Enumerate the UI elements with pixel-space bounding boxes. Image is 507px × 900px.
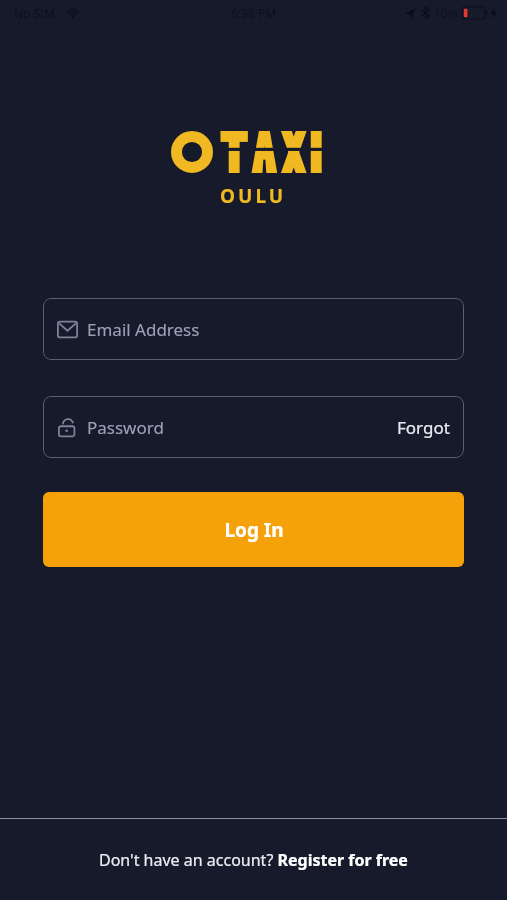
staticText: 10%: [434, 5, 458, 21]
other: Password: [57, 417, 78, 438]
other: Email: [57, 319, 78, 340]
staticText: Password: [87, 416, 164, 439]
staticText: Email Address: [87, 318, 200, 341]
staticText: 6:38 PM: [231, 5, 277, 21]
staticText: No SIM: [14, 5, 56, 21]
button[interactable]: Log In: [43, 492, 464, 567]
staticText: OULU: [220, 183, 287, 209]
button[interactable]: Email: [43, 298, 464, 360]
button[interactable]: Forgot: [397, 416, 450, 439]
staticText: Forgot: [397, 416, 450, 439]
button[interactable]: Don't have an account? Register for free: [0, 819, 507, 900]
staticText: Don't have an account? Register for free: [99, 849, 408, 871]
staticText: Log In: [224, 517, 284, 543]
button[interactable]: Password: [43, 396, 464, 458]
